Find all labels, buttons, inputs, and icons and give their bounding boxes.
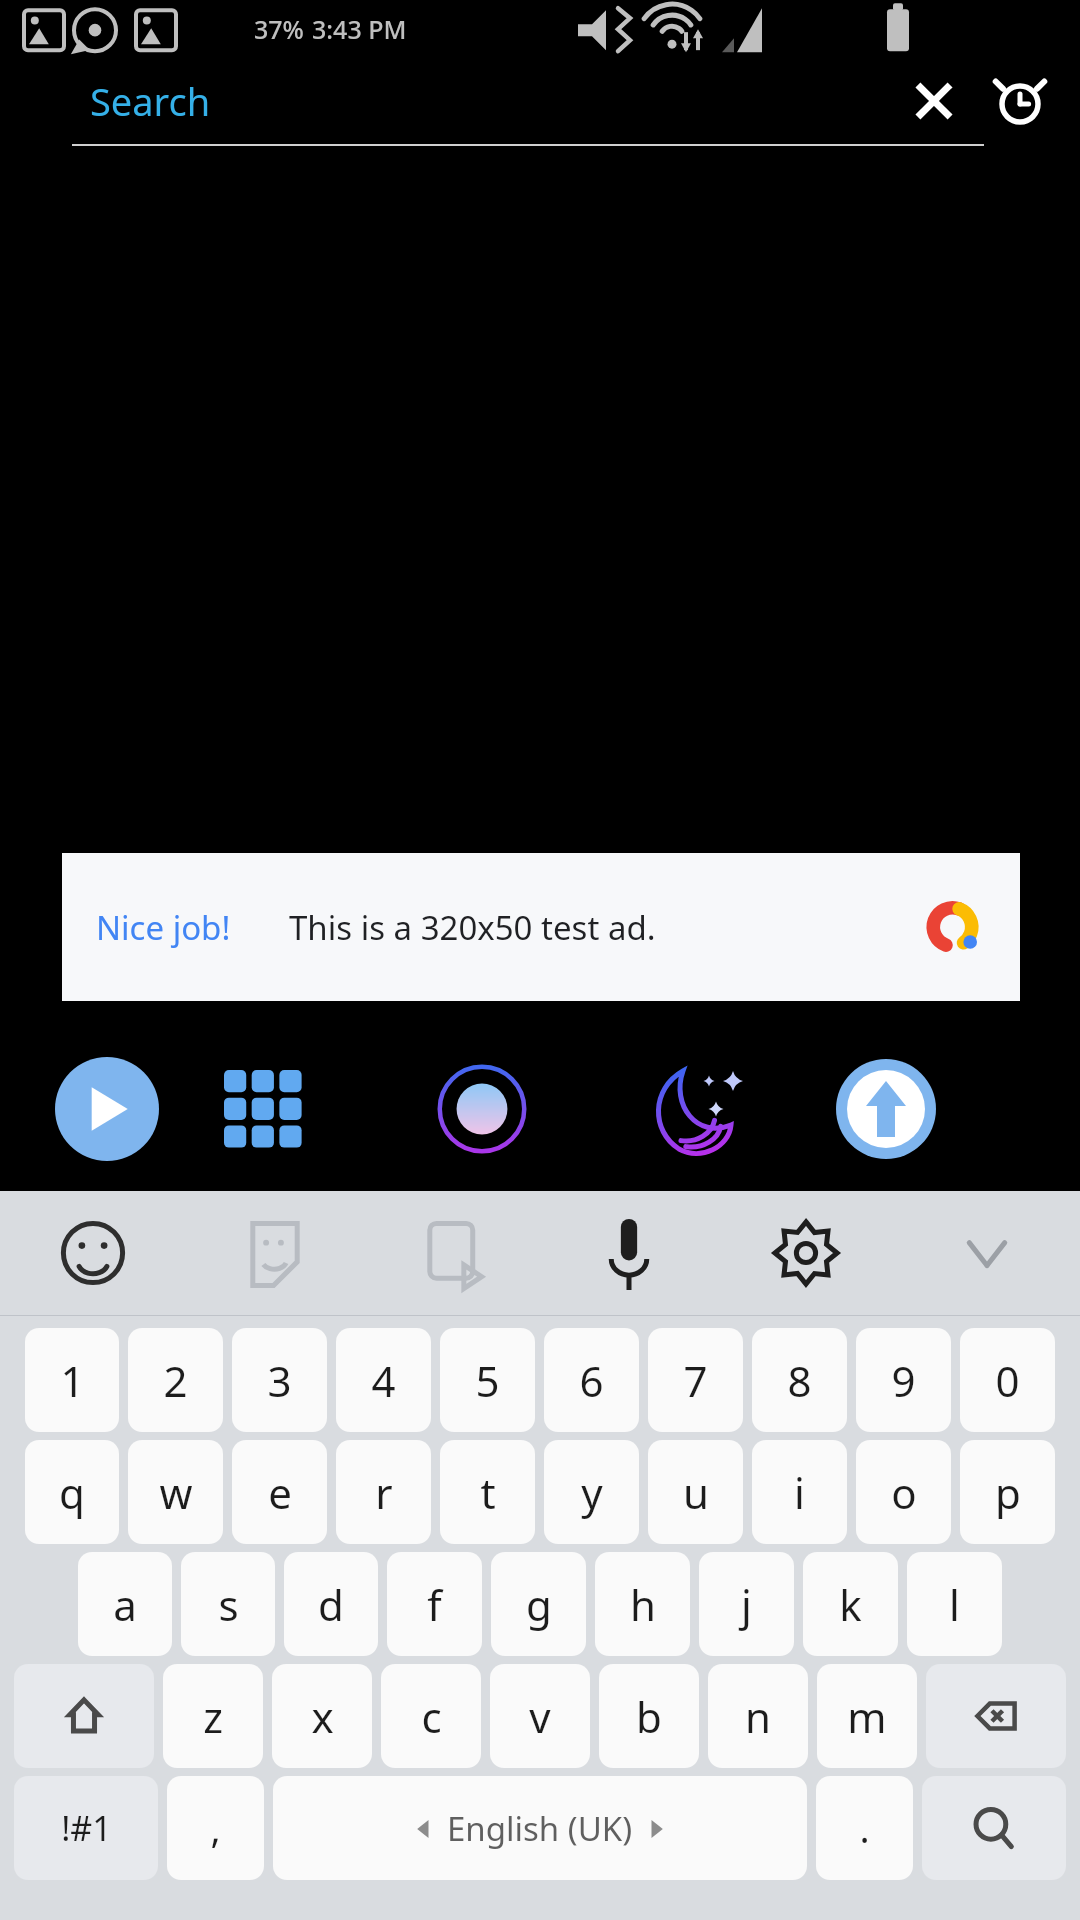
staticText: h [630, 1576, 656, 1633]
staticText: English (UK) [447, 1806, 633, 1851]
button[interactable]: u [648, 1440, 743, 1544]
staticText: Nice job! [96, 905, 231, 950]
button[interactable]: Emoji [0, 1191, 186, 1315]
button[interactable]: Hide keyboard [894, 1191, 1080, 1315]
staticText: g [526, 1576, 552, 1633]
button[interactable]: w [128, 1440, 223, 1544]
button[interactable]: Settings [717, 1191, 894, 1315]
button[interactable]: n [708, 1664, 808, 1768]
staticText: e [268, 1464, 292, 1521]
button[interactable]: Alarm [988, 69, 1052, 133]
staticText: j [741, 1576, 752, 1633]
button[interactable]: !#1 [14, 1776, 158, 1880]
staticText: p [995, 1464, 1021, 1521]
button[interactable]: s [181, 1552, 275, 1656]
staticText: s [218, 1576, 239, 1633]
button[interactable]: e [232, 1440, 327, 1544]
button[interactable]: p [960, 1440, 1055, 1544]
staticText: 3:43 PM [312, 12, 407, 46]
staticText: u [683, 1464, 709, 1521]
staticText: 3 [267, 1352, 292, 1409]
staticText: r [375, 1464, 393, 1521]
button[interactable]: Night mode [644, 1054, 754, 1164]
staticText: 2 [163, 1352, 188, 1409]
button[interactable]: 1 [25, 1328, 119, 1432]
staticText: 0 [995, 1352, 1020, 1409]
staticText: This is a 320x50 test ad. [289, 905, 656, 950]
button[interactable]: b [599, 1664, 699, 1768]
button[interactable]: 6 [544, 1328, 639, 1432]
button[interactable]: k [803, 1552, 898, 1656]
button[interactable]: 7 [648, 1328, 743, 1432]
button[interactable]: o [856, 1440, 951, 1544]
button[interactable]: l [907, 1552, 1002, 1656]
staticText: 1 [60, 1352, 85, 1409]
staticText: !#1 [61, 1805, 112, 1851]
staticText: q [59, 1464, 85, 1521]
button[interactable]: 0 [960, 1328, 1055, 1432]
button[interactable]: Play [55, 1057, 159, 1161]
staticText: 37% [254, 12, 304, 46]
staticText: z [203, 1688, 223, 1745]
button[interactable]: c [381, 1664, 481, 1768]
staticText: 6 [579, 1352, 604, 1409]
staticText: y [581, 1464, 603, 1521]
staticText: m [847, 1688, 887, 1745]
button[interactable]: z [163, 1664, 263, 1768]
button[interactable]: , [167, 1776, 264, 1880]
button[interactable]: v [490, 1664, 590, 1768]
button[interactable]: Shift [14, 1664, 154, 1768]
button[interactable]: GIF [363, 1191, 540, 1315]
staticText: 9 [891, 1352, 916, 1409]
staticText: i [794, 1464, 805, 1521]
button[interactable]: Nice job! [62, 853, 1020, 1001]
button[interactable]: m [817, 1664, 917, 1768]
button[interactable]: g [491, 1552, 586, 1656]
staticText: o [891, 1464, 917, 1521]
staticText: 4 [371, 1352, 396, 1409]
button[interactable]: 3 [232, 1328, 327, 1432]
staticText: w [159, 1464, 193, 1521]
button[interactable]: 5 [440, 1328, 535, 1432]
button[interactable]: English (UK) [273, 1776, 807, 1880]
button[interactable]: Clear search [902, 69, 966, 133]
button[interactable]: d [284, 1552, 378, 1656]
staticText: 7 [683, 1352, 708, 1409]
button[interactable]: y [544, 1440, 639, 1544]
staticText: 5 [475, 1352, 500, 1409]
staticText: . [859, 1802, 870, 1854]
button[interactable]: . [816, 1776, 913, 1880]
button[interactable]: q [25, 1440, 119, 1544]
button[interactable]: Search [90, 75, 902, 127]
staticText: l [949, 1576, 960, 1633]
staticText: 8 [787, 1352, 812, 1409]
button[interactable]: r [336, 1440, 431, 1544]
staticText: f [427, 1576, 442, 1633]
button[interactable]: Stickers [186, 1191, 363, 1315]
button[interactable]: 4 [336, 1328, 431, 1432]
button[interactable]: Backspace [926, 1664, 1066, 1768]
button[interactable]: j [699, 1552, 794, 1656]
button[interactable]: h [595, 1552, 690, 1656]
button[interactable]: i [752, 1440, 847, 1544]
staticText: n [745, 1688, 771, 1745]
staticText: x [311, 1688, 334, 1745]
staticText: b [636, 1688, 662, 1745]
button[interactable]: a [78, 1552, 172, 1656]
button[interactable]: Upload [834, 1057, 938, 1161]
button[interactable]: Grid view [211, 1057, 315, 1161]
button[interactable]: Voice input [540, 1191, 717, 1315]
staticText: d [318, 1576, 344, 1633]
staticText: k [839, 1576, 862, 1633]
button[interactable]: t [440, 1440, 535, 1544]
button[interactable]: Search [922, 1776, 1066, 1880]
button[interactable]: x [272, 1664, 372, 1768]
button[interactable]: 8 [752, 1328, 847, 1432]
button[interactable]: Record [430, 1057, 534, 1161]
button[interactable]: 9 [856, 1328, 951, 1432]
staticText: c [421, 1688, 442, 1745]
staticText: v [529, 1688, 551, 1745]
button[interactable]: 2 [128, 1328, 223, 1432]
button[interactable]: f [387, 1552, 482, 1656]
staticText: t [480, 1464, 496, 1521]
